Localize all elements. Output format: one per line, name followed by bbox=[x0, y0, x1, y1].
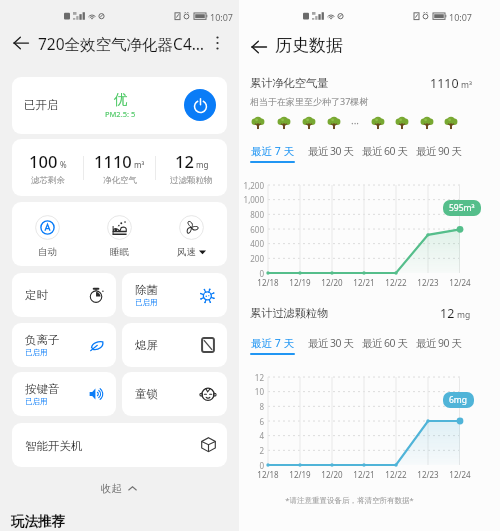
staticText: 6 bbox=[239, 416, 264, 427]
button[interactable]: 按键音 bbox=[12, 372, 116, 416]
staticText: 1110 bbox=[94, 150, 132, 172]
staticText: 优 bbox=[114, 91, 128, 108]
staticText: % bbox=[60, 159, 67, 170]
staticText: 最近 60 天 bbox=[362, 144, 408, 158]
staticText: 12 bbox=[239, 372, 264, 383]
button[interactable]: 熄屏 bbox=[122, 323, 227, 367]
staticText: 定时 bbox=[25, 288, 48, 302]
staticText: 0 bbox=[239, 460, 264, 471]
staticText: m³ bbox=[461, 79, 472, 91]
staticText: 负离子 bbox=[25, 333, 60, 347]
staticText: 2 bbox=[239, 445, 264, 456]
staticText: 12/18 bbox=[253, 277, 283, 288]
staticText: 1110 bbox=[430, 75, 459, 92]
button[interactable]: More options bbox=[205, 31, 229, 55]
staticText: 12/18 bbox=[253, 469, 283, 480]
button[interactable]: 童锁 bbox=[122, 372, 227, 416]
staticText: 滤芯剩余 bbox=[31, 175, 65, 186]
button[interactable]: 最近 7 天 bbox=[246, 332, 298, 358]
button[interactable]: 最近 90 天 bbox=[411, 140, 463, 166]
button[interactable]: 最近 60 天 bbox=[357, 332, 409, 358]
staticText: 已启用 bbox=[135, 298, 158, 307]
staticText: mg bbox=[196, 159, 209, 170]
staticText: m³ bbox=[134, 159, 145, 170]
staticText: 12/22 bbox=[381, 469, 411, 480]
staticText: PM2.5: 5 bbox=[105, 109, 136, 119]
staticText: 自动 bbox=[38, 246, 57, 258]
staticText: 已开启 bbox=[24, 98, 59, 112]
staticText: 净化空气 bbox=[103, 175, 137, 186]
staticText: 收起 bbox=[101, 482, 122, 495]
staticText: 10:07 bbox=[210, 11, 234, 23]
staticText: 智能开关机 bbox=[25, 439, 83, 453]
staticText: 10 bbox=[239, 386, 264, 397]
button[interactable]: 负离子 bbox=[12, 323, 116, 367]
staticText: 12/24 bbox=[445, 277, 475, 288]
button[interactable]: Back bbox=[8, 30, 34, 56]
staticText: 12/19 bbox=[285, 277, 315, 288]
staticText: 按键音 bbox=[25, 382, 60, 396]
button[interactable]: 风速 bbox=[155, 202, 227, 266]
staticText: 最近 60 天 bbox=[362, 336, 408, 350]
staticText: 最近 7 天 bbox=[251, 336, 294, 350]
button[interactable]: 定时 bbox=[12, 273, 116, 317]
staticText: 12/21 bbox=[349, 277, 379, 288]
staticText: mg bbox=[457, 309, 471, 321]
staticText: 800 bbox=[239, 209, 264, 220]
staticText: ··· bbox=[351, 116, 360, 130]
button[interactable]: Power bbox=[184, 89, 216, 121]
staticText: 1,000 bbox=[239, 194, 264, 205]
staticText: 12 bbox=[440, 305, 455, 322]
staticText: 童锁 bbox=[135, 387, 158, 401]
button[interactable]: 最近 30 天 bbox=[303, 140, 355, 166]
staticText: 睡眠 bbox=[110, 246, 129, 258]
staticText: 12/20 bbox=[317, 277, 347, 288]
staticText: 最近 90 天 bbox=[416, 144, 462, 158]
staticText: 720全效空气净化器C4… bbox=[38, 33, 205, 54]
button[interactable]: Back bbox=[247, 35, 271, 59]
staticText: 累计净化空气量 bbox=[250, 76, 329, 90]
button[interactable]: 最近 30 天 bbox=[303, 332, 355, 358]
staticText: 累计过滤颗粒物 bbox=[250, 306, 329, 320]
staticText: 12/23 bbox=[413, 277, 443, 288]
staticText: 熄屏 bbox=[135, 338, 158, 352]
staticText: 除菌 bbox=[135, 283, 158, 297]
staticText: 12/20 bbox=[317, 469, 347, 480]
button[interactable]: 智能开关机 bbox=[12, 423, 227, 467]
staticText: 最近 7 天 bbox=[251, 144, 294, 158]
staticText: 历史数据 bbox=[275, 35, 343, 56]
staticText: 过滤颗粒物 bbox=[170, 175, 213, 186]
button[interactable]: 已开启 bbox=[12, 77, 227, 134]
staticText: 12/21 bbox=[349, 469, 379, 480]
staticText: 已启用 bbox=[25, 397, 48, 406]
staticText: 595m³ bbox=[449, 202, 475, 214]
staticText: 风速 bbox=[177, 246, 196, 258]
staticText: 最近 30 天 bbox=[308, 144, 354, 158]
staticText: 400 bbox=[239, 238, 264, 249]
staticText: 玩法推荐 bbox=[11, 513, 65, 530]
staticText: 12/22 bbox=[381, 277, 411, 288]
staticText: 600 bbox=[239, 224, 264, 235]
staticText: 1,200 bbox=[239, 180, 264, 191]
staticText: 200 bbox=[239, 253, 264, 264]
staticText: 12/23 bbox=[413, 469, 443, 480]
staticText: 12 bbox=[175, 150, 194, 172]
button[interactable]: 自动 bbox=[12, 202, 83, 266]
staticText: 相当于在家里至少种了37棵树 bbox=[250, 95, 369, 107]
staticText: 100 bbox=[29, 150, 58, 172]
button[interactable]: 最近 90 天 bbox=[411, 332, 463, 358]
button[interactable]: 最近 60 天 bbox=[357, 140, 409, 166]
staticText: 最近 90 天 bbox=[416, 336, 462, 350]
staticText: 0 bbox=[239, 268, 264, 279]
button[interactable]: 除菌 bbox=[122, 273, 227, 317]
staticText: 最近 30 天 bbox=[308, 336, 354, 350]
staticText: 12/24 bbox=[445, 469, 475, 480]
staticText: 6mg bbox=[449, 394, 468, 406]
button[interactable]: 最近 7 天 bbox=[246, 140, 298, 166]
staticText: 10:07 bbox=[449, 11, 473, 23]
staticText: *请注意重置设备后，将清空所有数据* bbox=[219, 495, 480, 505]
staticText: 已启用 bbox=[25, 348, 48, 357]
staticText: 4 bbox=[239, 430, 264, 441]
button[interactable]: 睡眠 bbox=[83, 202, 155, 266]
button[interactable]: 收起 bbox=[96, 479, 142, 497]
